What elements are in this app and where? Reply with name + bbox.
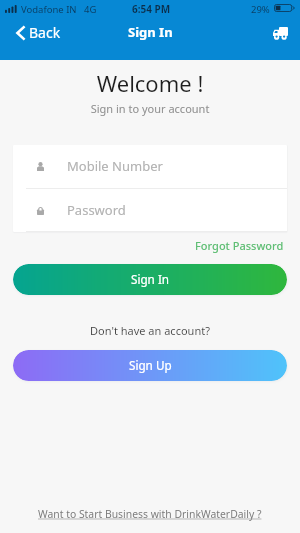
button[interactable]: Want to Start Business with DrinkWaterDa… bbox=[35, 504, 265, 524]
button[interactable]: Sign Up bbox=[13, 350, 287, 381]
staticText: Sign Up bbox=[129, 357, 172, 373]
button[interactable]: Mobile Number bbox=[13, 145, 287, 188]
staticText: Welcome ! bbox=[0, 68, 300, 98]
staticText: Password bbox=[67, 201, 126, 219]
button[interactable]: Forgot Password bbox=[192, 234, 287, 257]
button[interactable]: Password bbox=[13, 189, 287, 232]
staticText: Forgot Password bbox=[195, 238, 284, 253]
staticText: Sign in to your account bbox=[0, 101, 300, 116]
staticText: Back bbox=[29, 23, 61, 42]
staticText: Don't have an account? bbox=[0, 323, 300, 338]
button[interactable]: Back bbox=[0, 17, 69, 47]
staticText: 29% bbox=[251, 3, 270, 16]
staticText: Sign In bbox=[128, 23, 173, 41]
staticText: Sign In bbox=[131, 271, 170, 287]
staticText: Mobile Number bbox=[67, 157, 163, 175]
button[interactable]: Delivery bbox=[265, 20, 300, 47]
staticText: 4G bbox=[84, 3, 97, 16]
staticText: Vodafone IN bbox=[21, 3, 77, 16]
button[interactable]: Sign In bbox=[13, 264, 287, 295]
staticText: 6:54 PM bbox=[132, 2, 171, 16]
